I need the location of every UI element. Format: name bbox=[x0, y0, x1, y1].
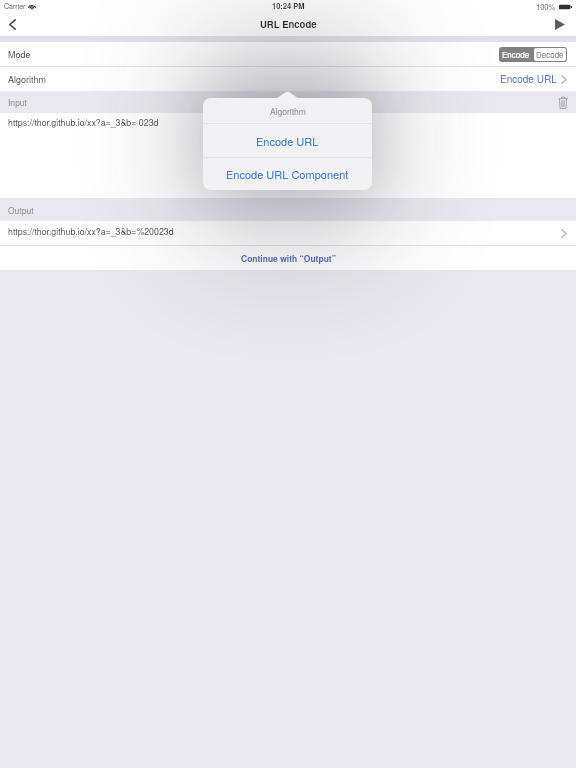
staticText: 10:24 PM bbox=[272, 1, 305, 12]
staticText: 100% bbox=[536, 1, 556, 12]
staticText: Output bbox=[8, 204, 34, 216]
staticText: Carrier bbox=[4, 1, 26, 11]
button[interactable]: https://thor.github.io/xx?a=_3&b=%20023d bbox=[0, 221, 576, 245]
button[interactable]: Mode bbox=[0, 42, 576, 66]
staticText: https://thor.github.io/xx?a=_3&b= 023d bbox=[8, 116, 159, 129]
button[interactable]: Back bbox=[1, 12, 23, 36]
button[interactable]: Clear input bbox=[556, 95, 570, 109]
staticText: URL Encode bbox=[260, 17, 317, 31]
staticText: Encode URL bbox=[500, 72, 557, 86]
button[interactable]: Run bbox=[550, 12, 570, 36]
staticText: Encode URL bbox=[256, 133, 319, 149]
staticText: Continue with “Output” bbox=[241, 252, 336, 264]
staticText: Encode bbox=[502, 49, 530, 60]
staticText: Algorithm bbox=[270, 105, 306, 117]
staticText: Algorithm bbox=[8, 73, 46, 86]
button[interactable]: Encode bbox=[499, 47, 533, 62]
staticText: https://thor.github.io/xx?a=_3&b=%20023d bbox=[8, 225, 174, 238]
staticText: Decode bbox=[536, 49, 564, 60]
button[interactable]: Decode bbox=[534, 48, 566, 61]
staticText: Encode URL Component bbox=[226, 166, 349, 182]
button[interactable]: Continue with “Output” bbox=[0, 246, 576, 270]
staticText: Input bbox=[8, 96, 27, 108]
staticText: Mode bbox=[8, 48, 31, 61]
button[interactable]: Algorithm bbox=[0, 67, 576, 91]
button[interactable]: Encode URL Component bbox=[203, 158, 372, 190]
button[interactable]: Encode URL bbox=[203, 124, 372, 157]
button[interactable]: https://thor.github.io/xx?a=_3&b= 023d bbox=[0, 113, 576, 198]
